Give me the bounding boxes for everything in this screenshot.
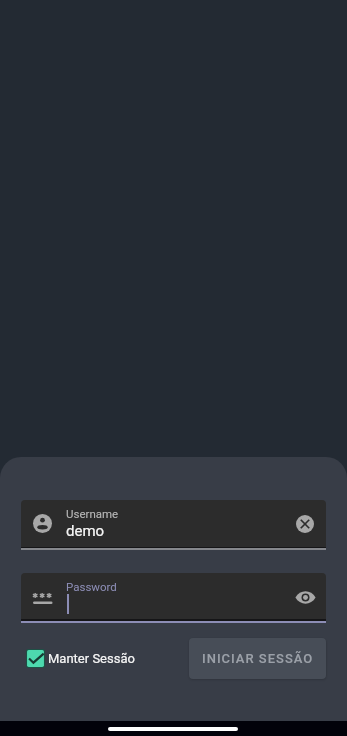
button[interactable]: Show password (293, 585, 317, 609)
staticText: Password (66, 580, 117, 593)
button[interactable]: Password (21, 573, 326, 619)
staticText: demo (66, 522, 105, 540)
button[interactable]: Username (21, 500, 326, 547)
button[interactable]: Clear username (293, 512, 317, 536)
staticText: Manter Sessão (48, 651, 135, 666)
staticText: Username (66, 507, 119, 520)
button[interactable]: INICIAR SESSÃO (189, 638, 326, 679)
staticText: INICIAR SESSÃO (202, 651, 314, 666)
button[interactable]: Manter Sessão (21, 643, 141, 674)
